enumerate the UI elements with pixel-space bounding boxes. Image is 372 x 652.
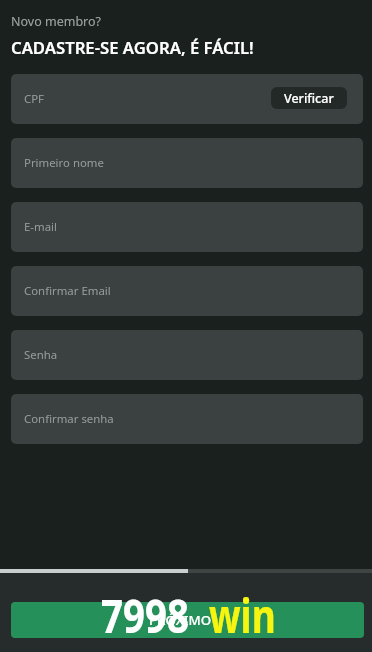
staticText: E-mail: [24, 219, 57, 235]
button[interactable]: Senha: [11, 330, 363, 380]
button[interactable]: CPF: [11, 74, 363, 124]
button[interactable]: Confirmar senha: [11, 394, 363, 444]
staticText: PRÓXIMO: [149, 611, 212, 629]
button[interactable]: PRÓXIMO: [11, 602, 364, 638]
button[interactable]: E-mail: [11, 202, 363, 252]
button[interactable]: Verificar: [271, 87, 347, 109]
staticText: Primeiro nome: [24, 155, 104, 171]
button[interactable]: Primeiro nome: [11, 138, 363, 188]
button[interactable]: Confirmar Email: [11, 266, 363, 316]
staticText: Senha: [24, 347, 58, 363]
staticText: win: [209, 583, 276, 647]
staticText: Confirmar Email: [24, 283, 111, 299]
staticText: CPF: [24, 91, 45, 107]
staticText: CADASTRE-SE AGORA, É FÁCIL!: [11, 36, 254, 59]
staticText: 7998: [101, 583, 189, 647]
other: Progresso do cadastro: [0, 569, 372, 573]
staticText: Novo membro?: [11, 13, 101, 30]
staticText: Verificar: [284, 90, 334, 107]
staticText: Confirmar senha: [24, 411, 114, 427]
